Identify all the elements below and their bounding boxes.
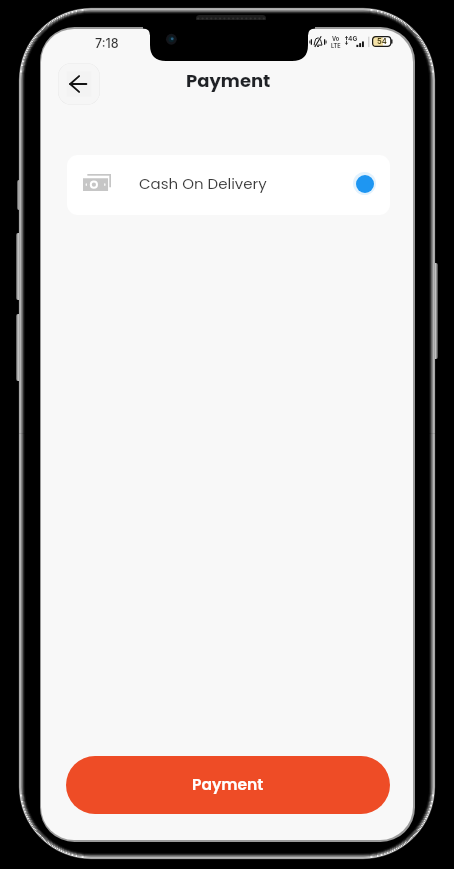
button[interactable]: Payment <box>66 756 390 814</box>
staticText: 4G <box>348 35 358 43</box>
staticText: 7:18 <box>95 36 119 51</box>
staticText: Cash On Delivery <box>139 173 267 194</box>
button[interactable]: Cash On Delivery <box>67 155 390 215</box>
staticText: Vo <box>332 36 340 43</box>
button[interactable]: Back <box>58 63 100 105</box>
staticText: Payment <box>186 68 271 93</box>
staticText: LTE <box>331 43 341 50</box>
staticText: 54 <box>377 37 387 46</box>
staticText: Payment <box>192 774 264 796</box>
